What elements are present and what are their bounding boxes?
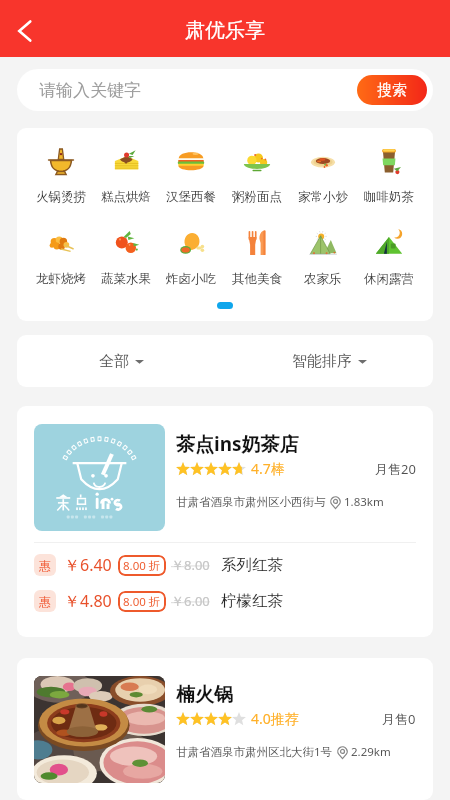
staticText: 汉堡西餐 bbox=[166, 189, 216, 205]
staticText: 肃优乐享 bbox=[185, 18, 265, 43]
staticText: 粥粉面点 bbox=[232, 189, 282, 205]
button[interactable]: 农家乐 bbox=[290, 228, 356, 287]
button[interactable]: 粥粉面点 bbox=[224, 146, 290, 205]
staticText: 其他美食 bbox=[232, 271, 282, 287]
staticText: 月售0 bbox=[382, 710, 416, 728]
button[interactable]: 龙虾烧烤 bbox=[28, 228, 93, 287]
staticText: 月售20 bbox=[375, 460, 416, 478]
button[interactable]: 蔬菜水果 bbox=[93, 228, 158, 287]
button[interactable]: 家常小炒 bbox=[290, 146, 356, 205]
staticText: 休闲露营 bbox=[364, 271, 414, 287]
staticText: 请输入关键字 bbox=[39, 80, 141, 101]
staticText: 甘肃省酒泉市肃州区小西街与 bbox=[176, 495, 326, 509]
staticText: 咖啡奶茶 bbox=[364, 189, 414, 205]
staticText: 炸卤小吃 bbox=[166, 271, 216, 287]
staticText: 4.0推荐 bbox=[251, 709, 299, 728]
staticText: 系列红茶 bbox=[221, 555, 283, 575]
button[interactable]: 炸卤小吃 bbox=[158, 228, 224, 287]
staticText: 柠檬红茶 bbox=[221, 591, 283, 611]
staticText: 楠火锅 bbox=[176, 683, 233, 707]
button[interactable]: 全部 bbox=[17, 335, 225, 387]
staticText: ￥6.00 bbox=[171, 592, 210, 610]
staticText: ￥6.40 bbox=[64, 554, 112, 576]
button[interactable]: 汉堡西餐 bbox=[158, 146, 224, 205]
staticText: 茶点ins奶茶店 bbox=[176, 431, 299, 457]
button[interactable]: 智能排序 bbox=[225, 335, 433, 387]
staticText: 惠 bbox=[39, 558, 51, 573]
staticText: 甘肃省酒泉市肃州区北大街1号 bbox=[176, 744, 333, 760]
button[interactable]: 糕点烘焙 bbox=[93, 146, 158, 205]
button[interactable]: 咖啡奶茶 bbox=[356, 146, 422, 205]
staticText: 糕点烘焙 bbox=[101, 189, 151, 205]
button[interactable]: 休闲露营 bbox=[356, 228, 422, 287]
staticText: 智能排序 bbox=[292, 352, 352, 371]
staticText: 蔬菜水果 bbox=[101, 271, 151, 287]
staticText: 家常小炒 bbox=[298, 189, 348, 205]
staticText: 1.83km bbox=[344, 494, 384, 510]
staticText: 农家乐 bbox=[304, 271, 342, 287]
button[interactable]: Back bbox=[3, 9, 47, 53]
button[interactable]: 楠火锅 bbox=[17, 658, 433, 800]
staticText: 2.29km bbox=[351, 744, 391, 760]
staticText: 龙虾烧烤 bbox=[36, 271, 86, 287]
staticText: 搜索 bbox=[377, 81, 407, 100]
button[interactable]: 搜索 bbox=[357, 75, 427, 105]
button[interactable]: 火锅烫捞 bbox=[28, 146, 93, 205]
staticText: 火锅烫捞 bbox=[36, 189, 86, 205]
button[interactable]: 其他美食 bbox=[224, 228, 290, 287]
button[interactable]: 茶点ins奶茶店 bbox=[17, 406, 433, 637]
staticText: 4.7棒 bbox=[251, 459, 285, 478]
staticText: 8.00 折 bbox=[123, 558, 161, 574]
staticText: 惠 bbox=[39, 594, 51, 609]
staticText: ￥4.80 bbox=[64, 590, 112, 612]
staticText: 8.00 折 bbox=[123, 594, 161, 610]
staticText: ￥8.00 bbox=[171, 556, 210, 574]
staticText: 全部 bbox=[99, 352, 129, 371]
